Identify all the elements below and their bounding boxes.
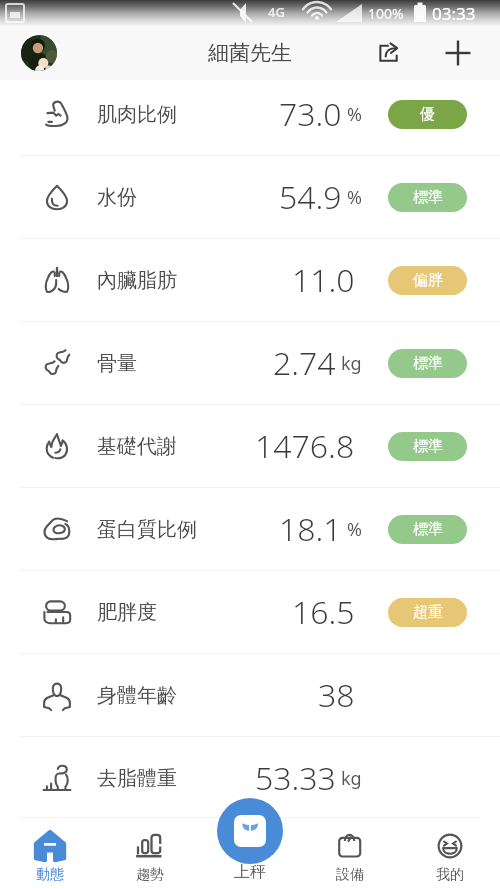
staticText: 細菌先生 xyxy=(208,40,292,66)
staticText: 標準 xyxy=(413,437,443,456)
button[interactable]: 身體年齡 xyxy=(0,654,500,736)
button[interactable]: 超重 xyxy=(388,598,467,627)
staticText: 18.1 xyxy=(279,507,342,551)
staticText: 我的 xyxy=(436,866,464,884)
button[interactable]: Weigh in xyxy=(217,798,283,864)
button[interactable]: Profile photo xyxy=(21,35,57,71)
staticText: % xyxy=(347,185,362,210)
staticText: 超重 xyxy=(413,603,443,622)
staticText: 趨勢 xyxy=(136,866,164,884)
staticText: 設備 xyxy=(336,866,364,884)
staticText: 標準 xyxy=(413,520,443,539)
staticText: 肌肉比例 xyxy=(97,102,177,127)
staticText: 骨量 xyxy=(97,351,137,376)
button[interactable]: 標準 xyxy=(388,432,467,461)
button[interactable]: 蛋白質比例 xyxy=(0,488,500,570)
button[interactable]: 標準 xyxy=(388,515,467,544)
staticText: 54.9 xyxy=(279,175,342,219)
button[interactable]: 內臟脂肪 xyxy=(0,239,500,321)
staticText: 標準 xyxy=(413,354,443,373)
staticText: 53.33 xyxy=(255,756,336,800)
button[interactable]: 我的 xyxy=(400,818,500,889)
staticText: 上秤 xyxy=(234,862,266,882)
staticText: 身體年齡 xyxy=(97,683,177,708)
button[interactable]: 動態 xyxy=(0,818,100,889)
staticText: 肥胖度 xyxy=(97,600,157,625)
button[interactable]: 基礎代謝 xyxy=(0,405,500,487)
staticText: 16.5 xyxy=(292,590,355,634)
staticText: 水份 xyxy=(97,185,137,210)
button[interactable]: 水份 xyxy=(0,156,500,238)
staticText: kg xyxy=(341,766,362,791)
button[interactable]: 骨量 xyxy=(0,322,500,404)
staticText: 動態 xyxy=(36,866,64,884)
button[interactable]: 肥胖度 xyxy=(0,571,500,653)
staticText: 100% xyxy=(368,4,404,23)
button[interactable]: 趨勢 xyxy=(100,818,200,889)
staticText: 4G xyxy=(268,3,285,21)
staticText: 11.0 xyxy=(292,258,355,302)
button[interactable]: 去脂體重 xyxy=(0,737,500,819)
staticText: 蛋白質比例 xyxy=(97,517,197,542)
staticText: 去脂體重 xyxy=(97,766,177,791)
staticText: 標準 xyxy=(413,188,443,207)
staticText: 基礎代謝 xyxy=(97,434,177,459)
staticText: 優 xyxy=(420,105,435,124)
staticText: kg xyxy=(341,351,362,376)
button[interactable]: 肌肉比例 xyxy=(0,73,500,155)
button[interactable]: 優 xyxy=(388,100,467,129)
staticText: 03:33 xyxy=(432,2,476,25)
staticText: 內臟脂肪 xyxy=(97,268,177,293)
staticText: 偏胖 xyxy=(413,271,443,290)
staticText: % xyxy=(347,517,362,542)
staticText: 38 xyxy=(318,673,355,717)
staticText: 1476.8 xyxy=(255,424,355,468)
button[interactable]: 設備 xyxy=(300,818,400,889)
staticText: 2.74 xyxy=(273,341,336,385)
button[interactable]: 標準 xyxy=(388,349,467,378)
button[interactable]: Add xyxy=(435,30,481,76)
button[interactable]: Share xyxy=(366,30,412,76)
button[interactable]: 偏胖 xyxy=(388,266,467,295)
staticText: % xyxy=(347,102,362,127)
staticText: 73.0 xyxy=(279,92,342,136)
button[interactable]: 標準 xyxy=(388,183,467,212)
